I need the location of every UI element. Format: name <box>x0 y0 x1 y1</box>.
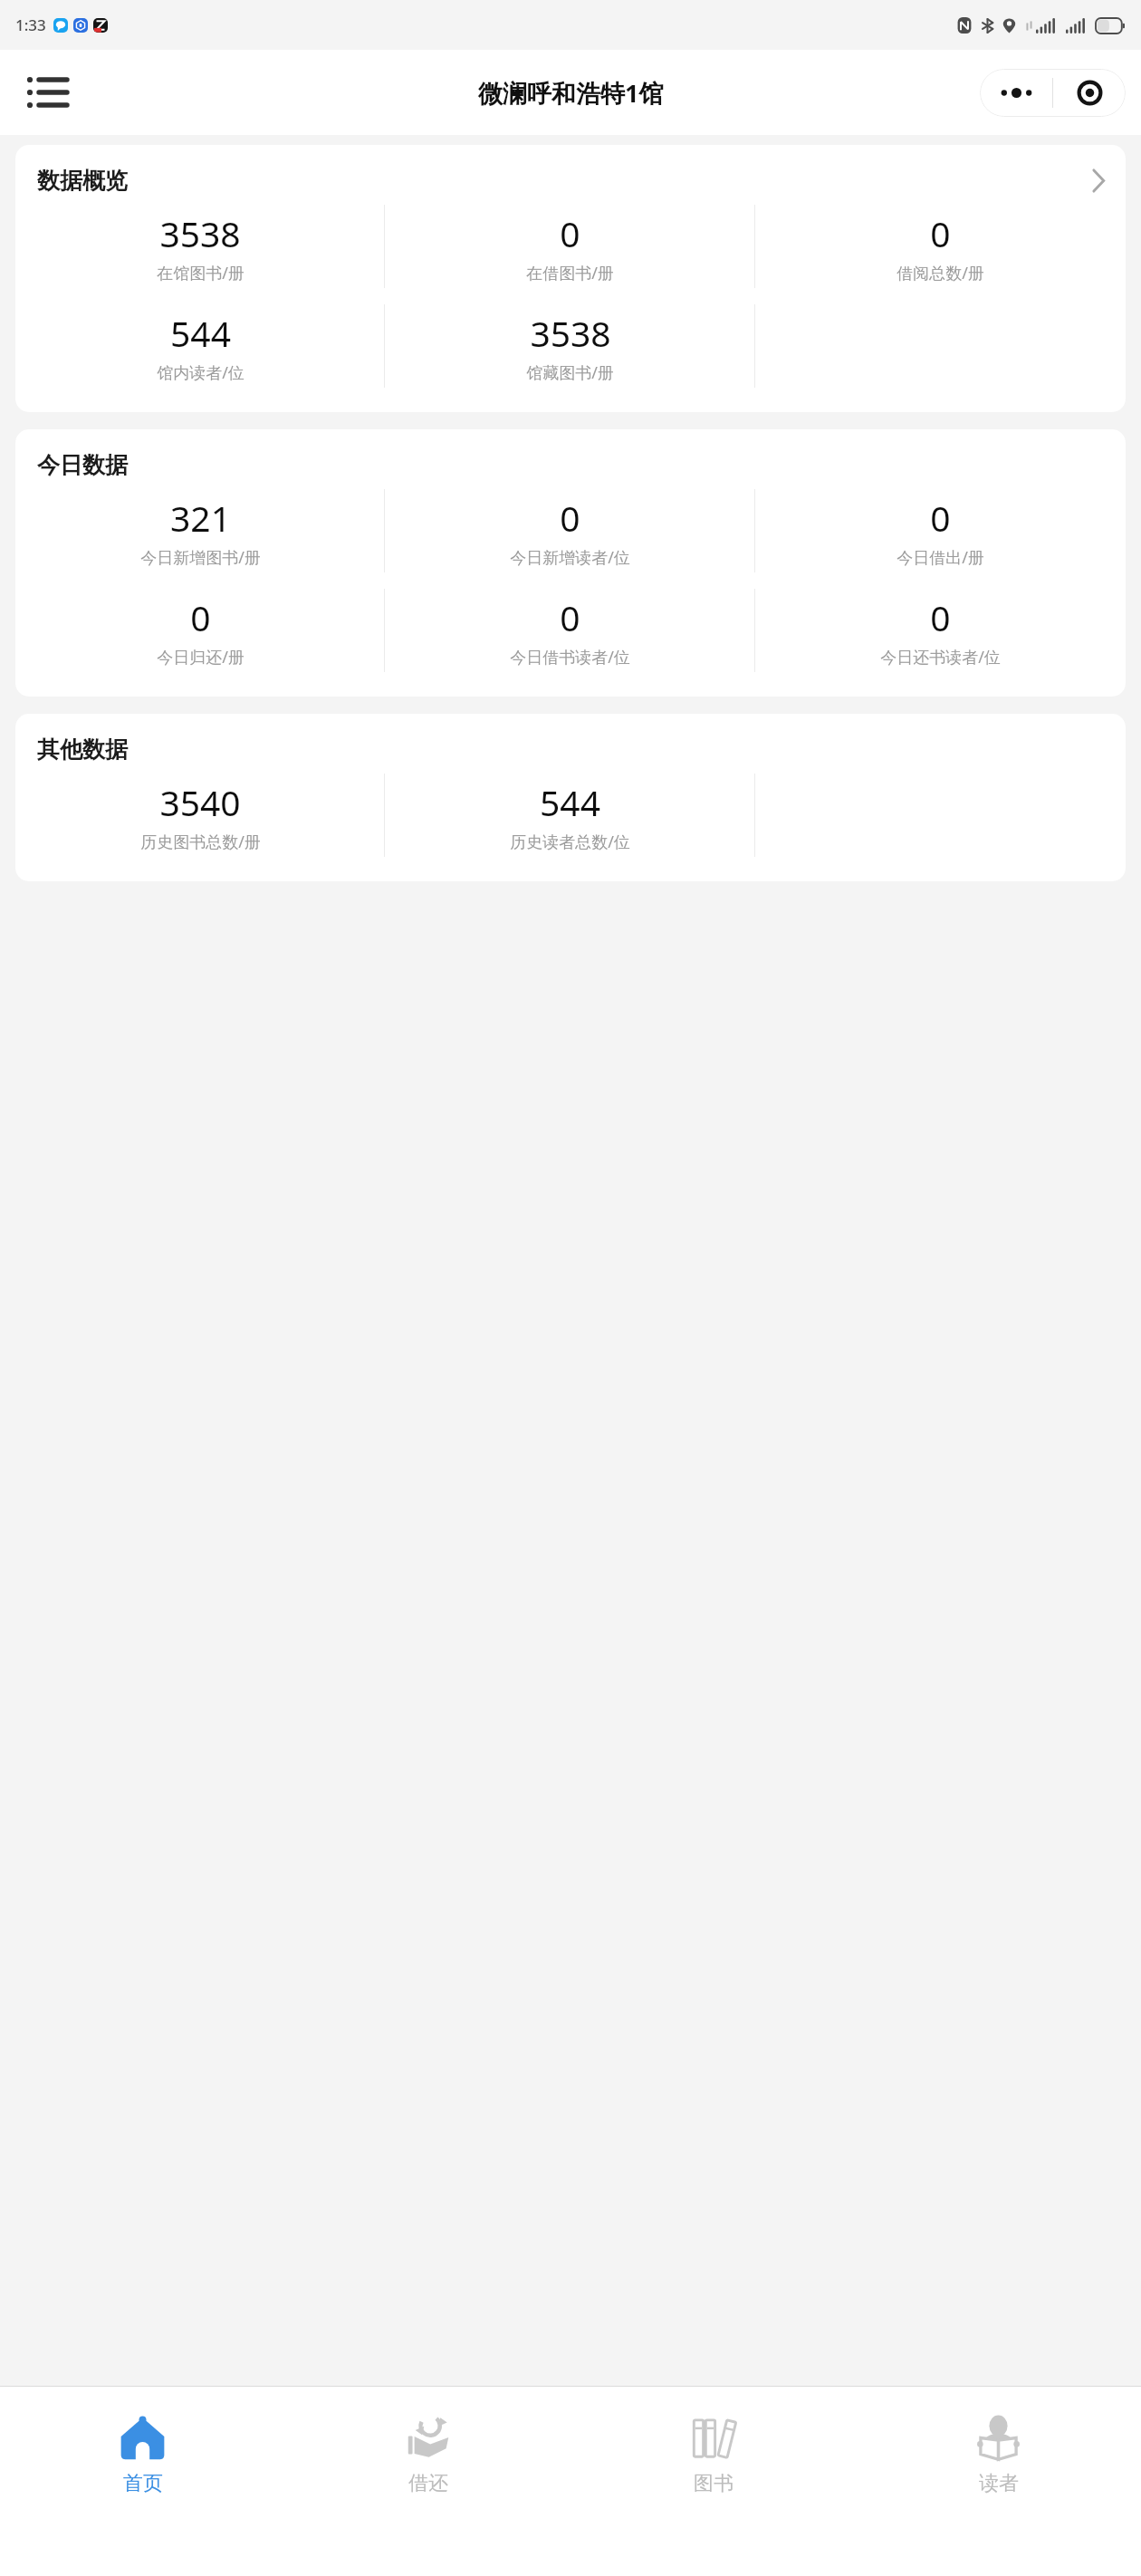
staticText: 今日新增读者/位 <box>510 546 630 569</box>
staticText: 0 <box>560 494 580 542</box>
staticText: 544 <box>170 309 231 357</box>
staticText: 借还 <box>408 2471 448 2496</box>
button[interactable]: 首页 <box>0 2387 285 2576</box>
staticText: 借阅总数/册 <box>896 262 984 284</box>
button[interactable]: 数据概览 <box>15 145 1126 412</box>
staticText: 0 <box>930 593 951 641</box>
button[interactable]: 图书 <box>570 2387 856 2576</box>
button[interactable]: Menu <box>25 70 71 115</box>
staticText: 今日借出/册 <box>896 546 984 569</box>
staticText: 历史读者总数/位 <box>510 831 630 853</box>
staticText: 0 <box>930 209 951 257</box>
staticText: 544 <box>540 778 600 826</box>
button[interactable]: 今日数据 <box>15 429 1126 697</box>
staticText: 0 <box>560 209 580 257</box>
staticText: 0 <box>190 593 211 641</box>
staticText: 历史图书总数/册 <box>140 831 261 853</box>
button[interactable]: 借还 <box>285 2387 570 2576</box>
staticText: 今日还书读者/位 <box>880 646 1001 668</box>
button[interactable]: 其他数据 <box>15 714 1126 881</box>
staticText: 今日数据 <box>37 451 128 479</box>
button[interactable]: More options and close <box>980 69 1126 117</box>
staticText: 今日借书读者/位 <box>510 646 630 668</box>
staticText: 321 <box>170 494 231 542</box>
staticText: 首页 <box>123 2471 163 2496</box>
button[interactable]: 读者 <box>856 2387 1141 2576</box>
staticText: 其他数据 <box>37 735 128 764</box>
staticText: 读者 <box>979 2471 1019 2496</box>
staticText: 馆藏图书/册 <box>526 361 614 384</box>
staticText: 在馆图书/册 <box>157 262 244 284</box>
staticText: 图书 <box>694 2471 733 2496</box>
staticText: 0 <box>560 593 580 641</box>
staticText: 3540 <box>159 778 241 826</box>
staticText: 今日新增图书/册 <box>140 546 261 569</box>
staticText: 今日归还/册 <box>157 646 244 668</box>
staticText: 数据概览 <box>37 167 128 195</box>
staticText: 1:33 <box>15 14 46 35</box>
staticText: 馆内读者/位 <box>157 361 244 384</box>
staticText: 0 <box>930 494 951 542</box>
staticText: 在借图书/册 <box>526 262 614 284</box>
staticText: 3538 <box>159 209 241 257</box>
staticText: 3538 <box>530 309 611 357</box>
staticText: 微澜呼和浩特1馆 <box>478 76 664 110</box>
